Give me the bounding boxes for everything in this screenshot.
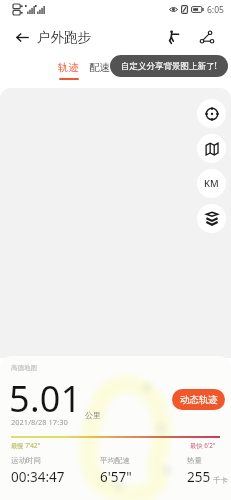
staticText: 最慢 7'42" xyxy=(11,441,41,450)
button[interactable]: Running stats xyxy=(161,25,185,49)
staticText: 平均配速 xyxy=(100,456,130,465)
button[interactable]: Map type xyxy=(197,134,226,163)
staticText: 热量 xyxy=(187,456,202,465)
staticText: 轨迹 xyxy=(58,61,79,74)
button[interactable]: 轨迹 xyxy=(56,61,81,80)
staticText: 自定义分享背景图上新了! xyxy=(121,60,217,72)
button[interactable]: Kilometer markers xyxy=(197,169,226,198)
button[interactable]: 配速 xyxy=(87,61,112,80)
button[interactable]: 自定义分享背景图上新了! xyxy=(110,55,228,77)
staticText: 配速 xyxy=(89,61,110,74)
staticText: 动态轨迹 xyxy=(180,394,218,406)
button[interactable]: Share xyxy=(195,25,219,49)
staticText: 6'57" xyxy=(100,468,132,486)
staticText: 千卡 xyxy=(213,476,228,485)
staticText: 户外跑步 xyxy=(37,29,91,46)
button[interactable]: Locate xyxy=(197,99,226,128)
staticText: 5.01 xyxy=(9,374,82,423)
staticText: 运动时间 xyxy=(11,456,41,465)
staticText: 6:05 xyxy=(207,4,224,16)
button[interactable]: Layers xyxy=(197,204,226,233)
staticText: 2021/8/28 17:30 xyxy=(11,417,68,427)
staticText: 最快 6'2" xyxy=(190,441,216,450)
staticText: 公里 xyxy=(85,410,101,420)
button[interactable]: Back xyxy=(11,26,33,48)
staticText: 高德地图 xyxy=(11,364,37,372)
staticText: 255 xyxy=(187,468,211,486)
staticText: KM xyxy=(204,177,219,190)
staticText: 00:34:47 xyxy=(11,468,65,486)
button[interactable]: 动态轨迹 xyxy=(172,389,225,410)
